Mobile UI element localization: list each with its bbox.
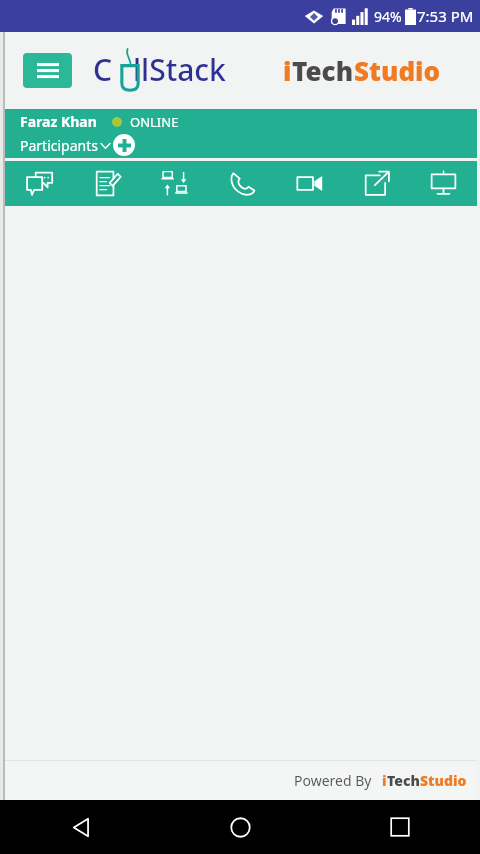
- button[interactable]: Screen share: [410, 161, 477, 206]
- button[interactable]: Video: [276, 161, 343, 206]
- staticText: llStack: [133, 49, 226, 90]
- staticText: Powered By: [294, 771, 372, 790]
- button[interactable]: File transfer: [141, 161, 209, 206]
- staticText: Tech: [292, 53, 354, 88]
- button[interactable]: C: [93, 46, 245, 94]
- button[interactable]: Chat: [5, 161, 73, 206]
- staticText: Participants: [20, 136, 98, 155]
- button[interactable]: Back: [0, 800, 160, 854]
- button[interactable]: Menu: [23, 53, 72, 88]
- staticText: 7:53 PM: [417, 6, 474, 26]
- button[interactable]: Home: [160, 800, 320, 854]
- button[interactable]: Call: [209, 161, 276, 206]
- button[interactable]: Notes: [73, 161, 141, 206]
- staticText: Tech: [387, 771, 420, 790]
- staticText: 94%: [374, 7, 402, 26]
- button[interactable]: Add participant: [113, 134, 135, 156]
- staticText: Faraz Khan: [20, 112, 97, 131]
- staticText: i: [283, 53, 292, 88]
- staticText: ONLINE: [130, 113, 179, 131]
- staticText: i: [382, 771, 387, 790]
- button[interactable]: Share: [343, 161, 410, 206]
- button[interactable]: Participants: [20, 136, 110, 155]
- button[interactable]: i: [283, 53, 441, 88]
- staticText: Studio: [420, 771, 467, 790]
- staticText: C: [93, 49, 113, 90]
- button[interactable]: Recent apps: [320, 800, 480, 854]
- staticText: Studio: [354, 53, 441, 88]
